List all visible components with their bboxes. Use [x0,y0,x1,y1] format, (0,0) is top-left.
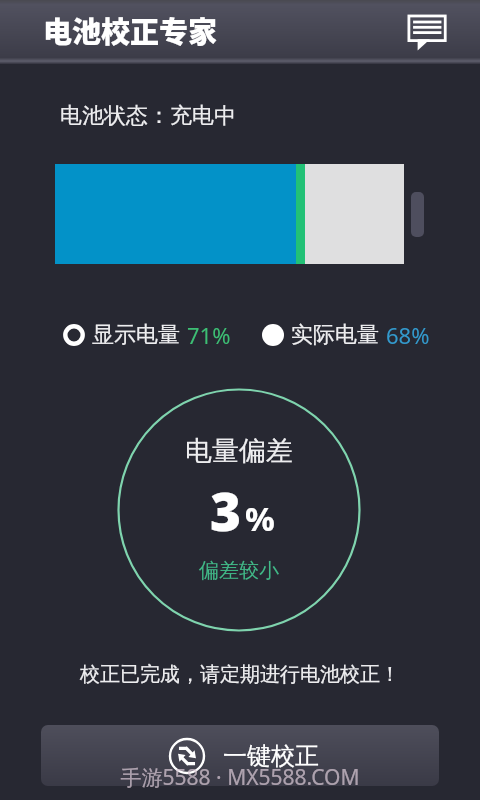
staticText: 一键校正 [223,741,319,771]
staticText: 手游5588 · MX5588.COM [0,763,480,792]
staticText: 偏差较小 [199,558,279,583]
staticText: 电量偏差 [185,434,293,468]
staticText: 校正已完成，请定期进行电池校正！ [0,662,480,687]
staticText: 71% [187,320,231,350]
button[interactable]: 一键校正 [41,725,439,786]
staticText: 实际电量 [291,321,379,349]
staticText: % [245,496,275,541]
button[interactable]: Messages [402,10,448,56]
staticText: 68% [386,320,430,350]
staticText: 3 [210,474,242,546]
staticText: 电池校正专家 [43,9,218,51]
staticText: 显示电量 [92,321,180,349]
staticText: 电池状态：充电中 [60,102,236,130]
